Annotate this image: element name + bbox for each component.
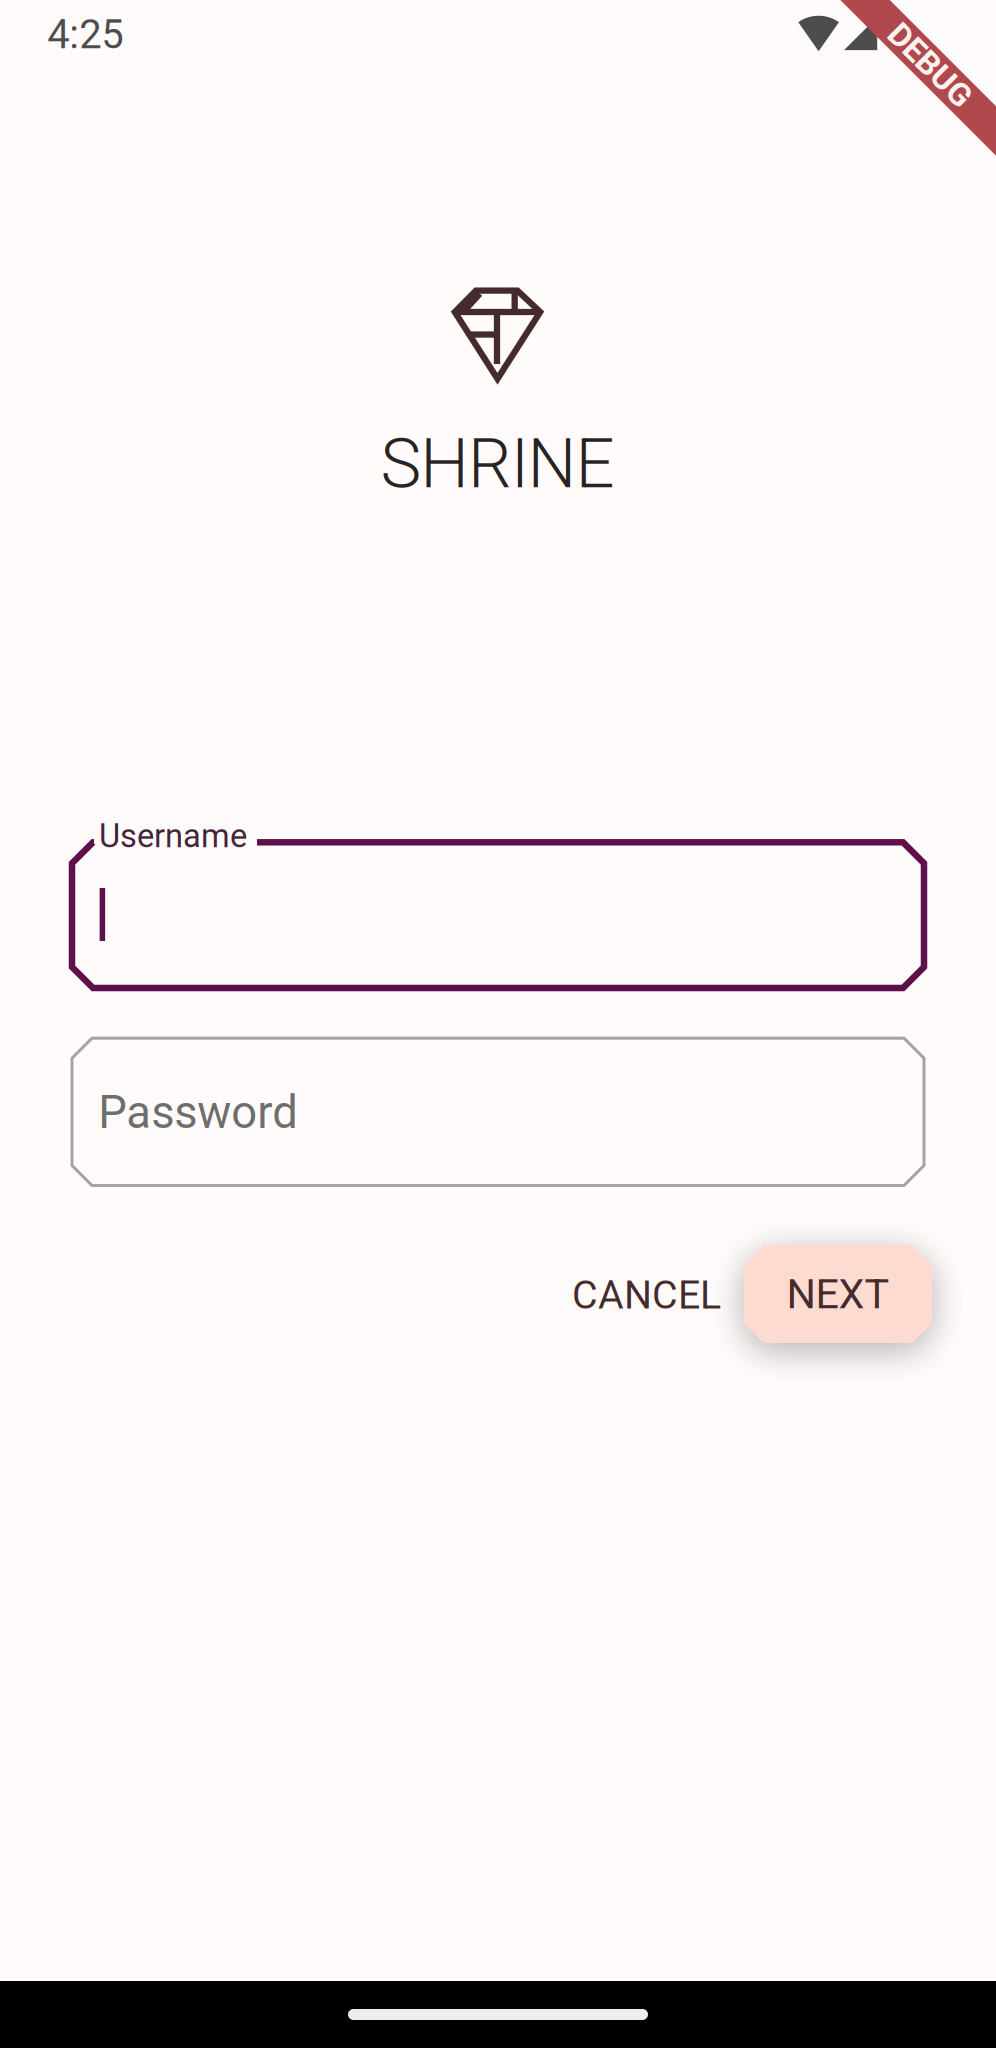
button[interactable]: Password xyxy=(72,1038,924,1185)
staticText: Password xyxy=(98,1086,298,1139)
staticText: Username xyxy=(99,817,247,855)
staticText: NEXT xyxy=(786,1270,889,1318)
button[interactable]: Username xyxy=(72,842,924,988)
button[interactable]: CANCEL xyxy=(531,1246,763,1344)
staticText: CANCEL xyxy=(572,1272,721,1318)
staticText: SHRINE xyxy=(380,423,614,504)
button[interactable]: NEXT xyxy=(744,1245,932,1343)
staticText: 4:25 xyxy=(47,11,123,58)
staticText: DEBUG xyxy=(878,46,982,84)
